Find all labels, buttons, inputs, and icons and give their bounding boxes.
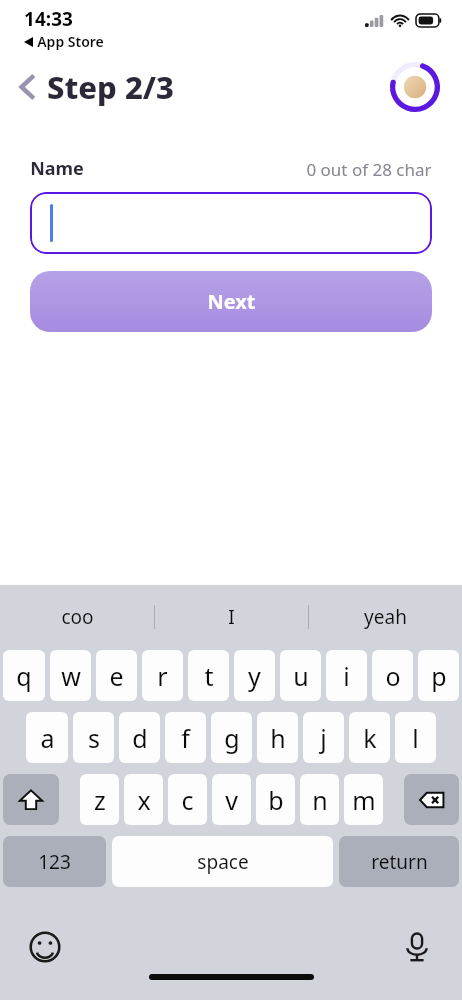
button[interactable]: a: [26, 712, 68, 763]
button[interactable]: r: [142, 650, 183, 701]
button[interactable]: Delete: [404, 774, 459, 825]
staticText: m: [352, 783, 376, 817]
staticText: Step 2/3: [47, 66, 174, 108]
button[interactable]: return: [339, 836, 459, 887]
button[interactable]: w: [50, 650, 91, 701]
button[interactable]: Dictation: [402, 932, 432, 962]
button[interactable]: m: [344, 774, 383, 825]
staticText: g: [224, 721, 240, 755]
staticText: v: [225, 783, 238, 817]
button[interactable]: Profile progress: [390, 62, 440, 112]
staticText: d: [132, 721, 148, 755]
staticText: yeah: [364, 604, 407, 630]
button[interactable]: d: [119, 712, 160, 763]
staticText: a: [40, 721, 55, 755]
staticText: t: [204, 659, 214, 693]
button[interactable]: j: [303, 712, 344, 763]
button[interactable]: c: [168, 774, 207, 825]
button[interactable]: b: [256, 774, 295, 825]
staticText: 123: [38, 849, 71, 875]
button[interactable]: x: [124, 774, 163, 825]
button[interactable]: 123: [3, 836, 106, 887]
button[interactable]: [30, 192, 432, 254]
staticText: e: [109, 659, 124, 693]
button[interactable]: q: [3, 650, 45, 701]
button[interactable]: coo: [0, 594, 154, 640]
staticText: b: [268, 783, 284, 817]
staticText: return: [371, 849, 428, 875]
staticText: 14:33: [24, 6, 73, 32]
staticText: 0 out of 28 char: [306, 158, 432, 181]
button[interactable]: s: [73, 712, 114, 763]
staticText: l: [412, 721, 419, 755]
staticText: f: [181, 721, 190, 755]
button[interactable]: Back: [14, 62, 180, 112]
staticText: w: [61, 659, 81, 693]
button[interactable]: p: [418, 650, 459, 701]
other: Back: [20, 74, 35, 100]
staticText: c: [181, 783, 194, 817]
button[interactable]: u: [280, 650, 321, 701]
button[interactable]: i: [326, 650, 367, 701]
button[interactable]: h: [257, 712, 298, 763]
staticText: x: [137, 783, 151, 817]
staticText: s: [88, 721, 100, 755]
staticText: n: [312, 783, 328, 817]
staticText: j: [320, 721, 327, 755]
button[interactable]: Shift: [3, 774, 59, 825]
button[interactable]: space: [112, 836, 333, 887]
staticText: h: [270, 721, 286, 755]
button[interactable]: Next: [30, 271, 432, 332]
staticText: Name: [30, 156, 84, 181]
staticText: I: [228, 604, 235, 630]
button[interactable]: o: [372, 650, 413, 701]
staticText: space: [197, 849, 249, 875]
button[interactable]: yeah: [309, 594, 462, 640]
staticText: i: [343, 659, 350, 693]
button[interactable]: g: [211, 712, 252, 763]
staticText: o: [385, 659, 401, 693]
button[interactable]: z: [80, 774, 119, 825]
staticText: k: [363, 721, 377, 755]
button[interactable]: e: [96, 650, 137, 701]
button[interactable]: n: [300, 774, 339, 825]
staticText: y: [248, 659, 261, 693]
button[interactable]: l: [395, 712, 436, 763]
staticText: u: [293, 659, 309, 693]
button[interactable]: y: [234, 650, 275, 701]
staticText: App Store: [37, 32, 104, 51]
staticText: q: [16, 659, 32, 693]
button[interactable]: k: [349, 712, 390, 763]
button[interactable]: v: [212, 774, 251, 825]
button[interactable]: I: [155, 594, 308, 640]
staticText: Next: [207, 288, 256, 315]
button[interactable]: t: [188, 650, 229, 701]
staticText: coo: [61, 604, 94, 630]
button[interactable]: Emoji: [28, 930, 62, 964]
staticText: r: [157, 659, 168, 693]
staticText: z: [94, 783, 106, 817]
staticText: p: [431, 659, 447, 693]
button[interactable]: f: [165, 712, 206, 763]
